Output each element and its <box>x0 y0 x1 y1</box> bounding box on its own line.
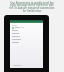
button[interactable] <box>10 63 43 67</box>
button[interactable] <box>10 24 43 26</box>
button[interactable] <box>10 29 43 32</box>
button[interactable] <box>10 38 43 41</box>
button[interactable] <box>10 41 43 44</box>
staticText: Use Boomerang to quickly send the right … <box>7 1 57 13</box>
button[interactable] <box>10 26 43 29</box>
button[interactable] <box>10 35 43 38</box>
button[interactable]: App bar <box>10 20 43 23</box>
button[interactable] <box>10 32 43 35</box>
